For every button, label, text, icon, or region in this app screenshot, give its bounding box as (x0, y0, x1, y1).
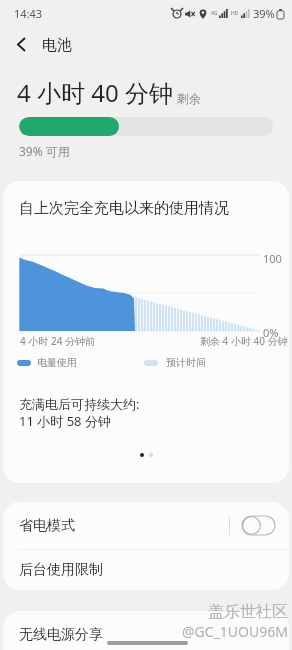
staticText: 剩余 (177, 91, 201, 106)
staticText: 0% (263, 325, 279, 340)
staticText: @GC_1UOU96M (182, 622, 288, 641)
staticText: 电量使用 (37, 356, 77, 369)
staticText: 省电模式 (19, 517, 75, 535)
staticText: 39% (253, 6, 275, 21)
staticText: 后台使用限制 (19, 561, 103, 579)
staticText: 自上次完全充电以来的使用情况 (19, 199, 229, 218)
staticText: 39% 可用 (19, 143, 70, 159)
staticText: 预计时间 (166, 356, 206, 369)
button[interactable]: 省电模式 (3, 502, 289, 549)
button[interactable]: Toggle power saving mode (242, 516, 275, 535)
staticText: 盖乐世社区 (208, 602, 288, 622)
staticText: 100 (263, 251, 282, 266)
staticText: 电池 (42, 36, 72, 55)
staticText: 4 小时 40 分钟 (17, 76, 173, 109)
staticText: 无线电源分享 (19, 626, 103, 644)
button[interactable]: 无线电源分享 (3, 611, 289, 650)
button[interactable]: Back (7, 30, 35, 58)
staticText: 4 小时 24 分钟前 (20, 334, 95, 348)
staticText: 4G (211, 10, 218, 17)
staticText: 11 小时 58 分钟 (19, 412, 111, 430)
staticText: 充满电后可持续大约: (19, 395, 140, 413)
staticText: 剩余 4 小时 40 分钟 (200, 334, 288, 348)
staticText: 14:43 (14, 6, 43, 21)
staticText: HD (231, 10, 239, 17)
button[interactable]: 后台使用限制 (3, 550, 289, 590)
